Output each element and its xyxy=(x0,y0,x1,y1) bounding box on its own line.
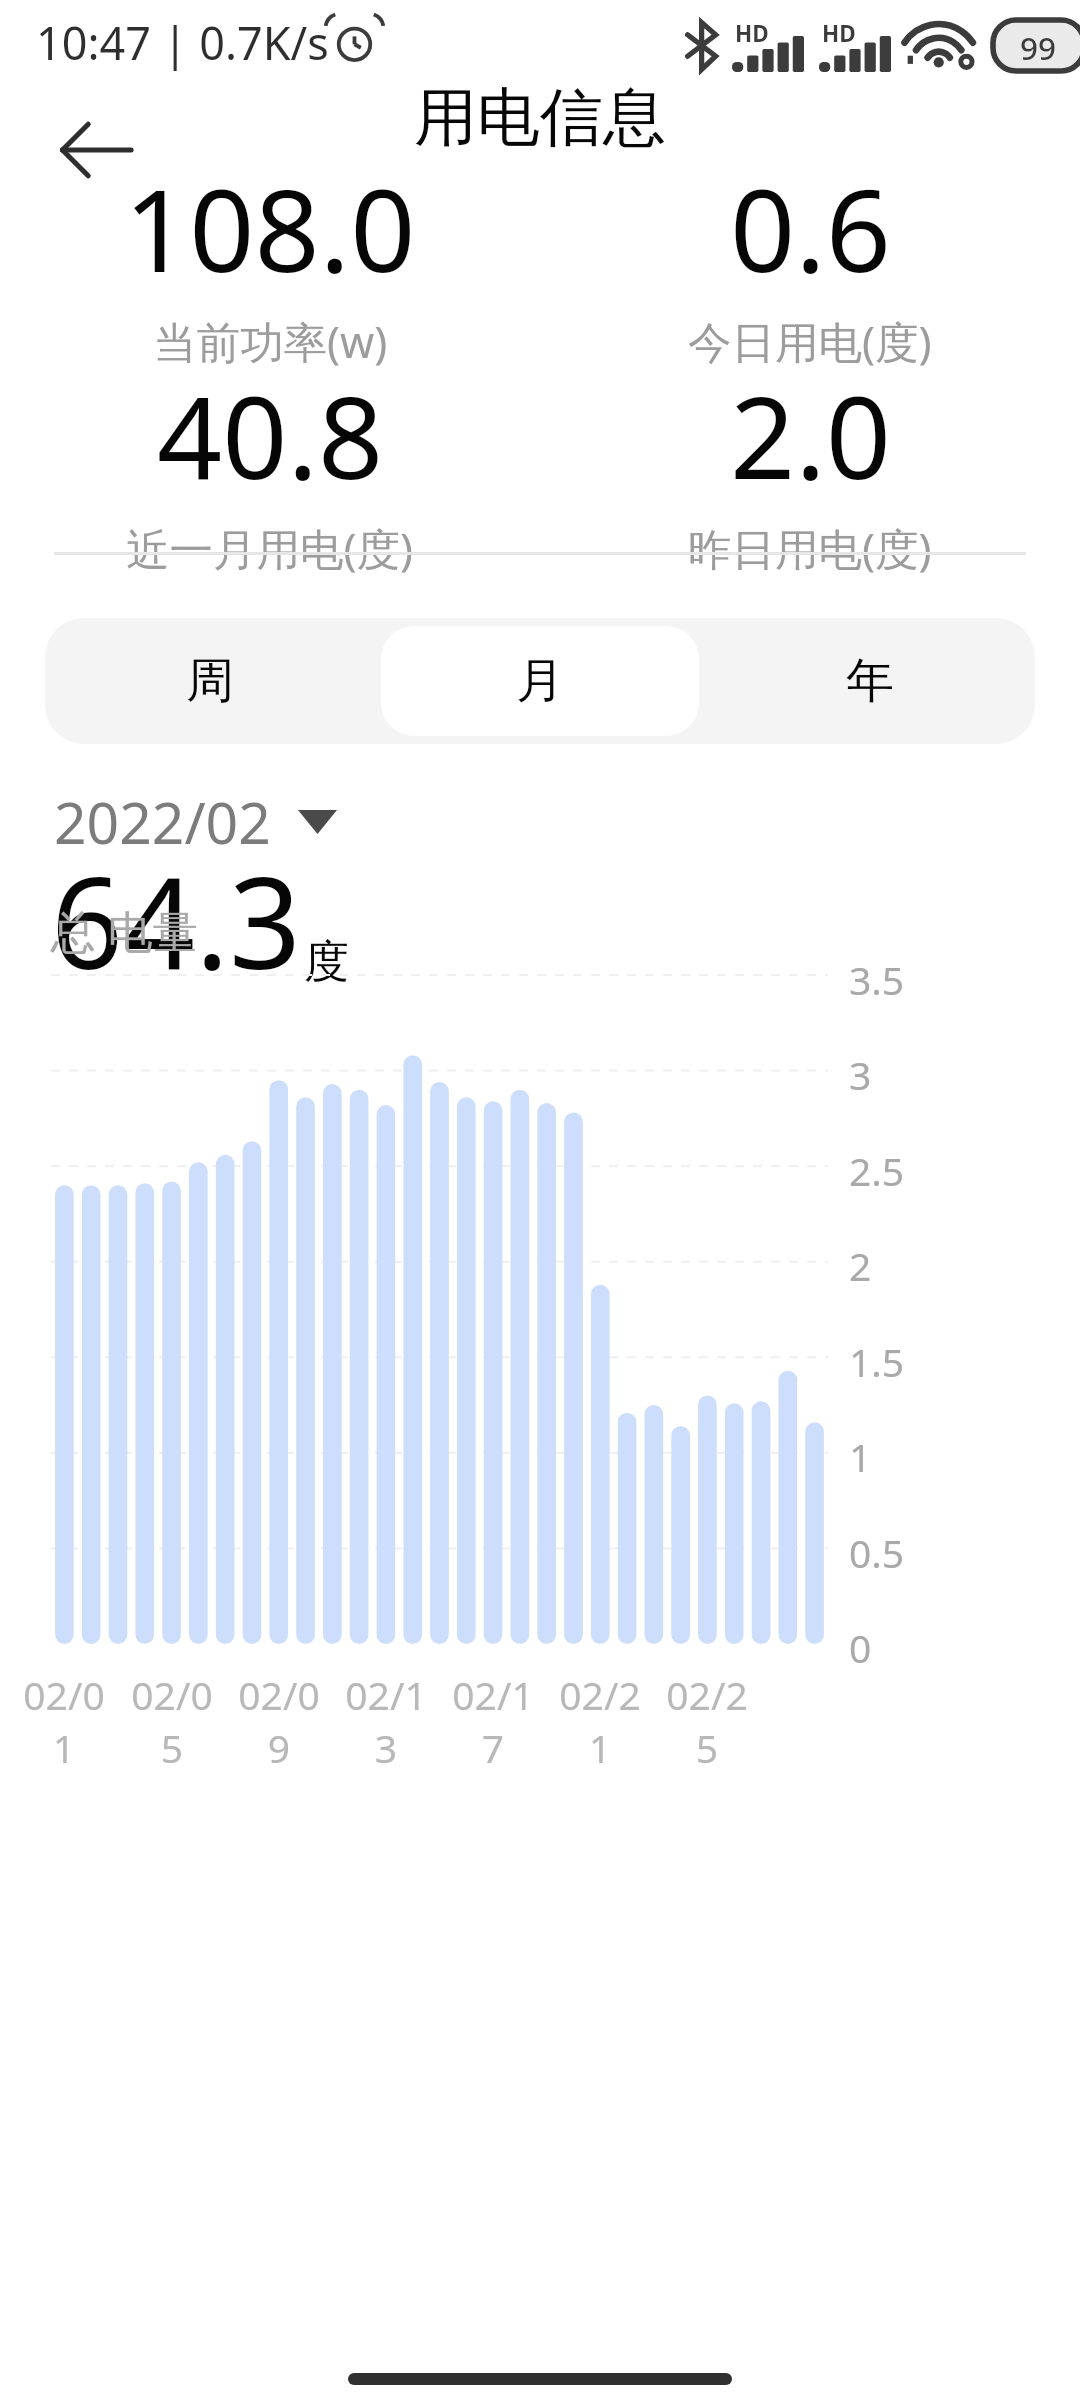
staticText: 2 xyxy=(849,1239,872,1292)
button[interactable]: 周 xyxy=(51,626,369,736)
staticText: HD xyxy=(735,18,769,49)
staticText: 周 xyxy=(186,651,234,711)
button[interactable]: 年 xyxy=(711,626,1029,736)
staticText: 02/25 xyxy=(656,1668,758,1774)
staticText: 02/05 xyxy=(121,1668,223,1774)
staticText: 昨日用电(度) xyxy=(688,518,932,577)
staticText: 总 电量 xyxy=(51,900,198,961)
staticText: 2.0 xyxy=(730,357,891,512)
staticText: 40.8 xyxy=(157,357,384,512)
staticText: 10:47 | 0.7K/s xyxy=(36,12,329,73)
staticText: 近一月用电(度) xyxy=(126,518,414,577)
staticText: HD xyxy=(822,18,856,49)
staticText: 3 xyxy=(849,1048,872,1101)
staticText: 108.0 xyxy=(124,150,416,305)
button[interactable]: 2.0 xyxy=(540,357,1080,577)
button[interactable]: 月 xyxy=(381,626,699,736)
staticText: 0.6 xyxy=(730,150,891,305)
staticText: 99 xyxy=(993,26,1080,69)
staticText: 64.3 xyxy=(51,834,301,1006)
staticText: 当前功率(w) xyxy=(153,311,388,370)
staticText: 0 xyxy=(849,1621,872,1674)
staticText: 今日用电(度) xyxy=(688,311,932,370)
staticText: 02/17 xyxy=(442,1668,544,1774)
staticText: 1.5 xyxy=(849,1335,905,1388)
button[interactable]: 40.8 xyxy=(0,357,540,577)
staticText: 1 xyxy=(849,1430,872,1483)
staticText: 年 xyxy=(846,651,894,711)
staticText: 3.5 xyxy=(849,953,905,1006)
staticText: 02/01 xyxy=(13,1668,115,1774)
button[interactable]: 0.6 xyxy=(540,150,1080,370)
button[interactable]: Back xyxy=(24,78,168,222)
staticText: 0.5 xyxy=(849,1526,905,1579)
staticText: 2022/02 xyxy=(54,783,271,861)
button[interactable]: 108.0 xyxy=(0,150,540,370)
staticText: 用电信息 xyxy=(0,78,1080,157)
staticText: 02/09 xyxy=(228,1668,330,1774)
staticText: 02/21 xyxy=(549,1668,651,1774)
staticText: 月 xyxy=(516,651,564,711)
button[interactable]: 2022/02 xyxy=(42,774,349,870)
staticText: 2.5 xyxy=(849,1144,905,1197)
staticText: 02/13 xyxy=(335,1668,437,1774)
staticText: 度 xyxy=(304,934,349,991)
